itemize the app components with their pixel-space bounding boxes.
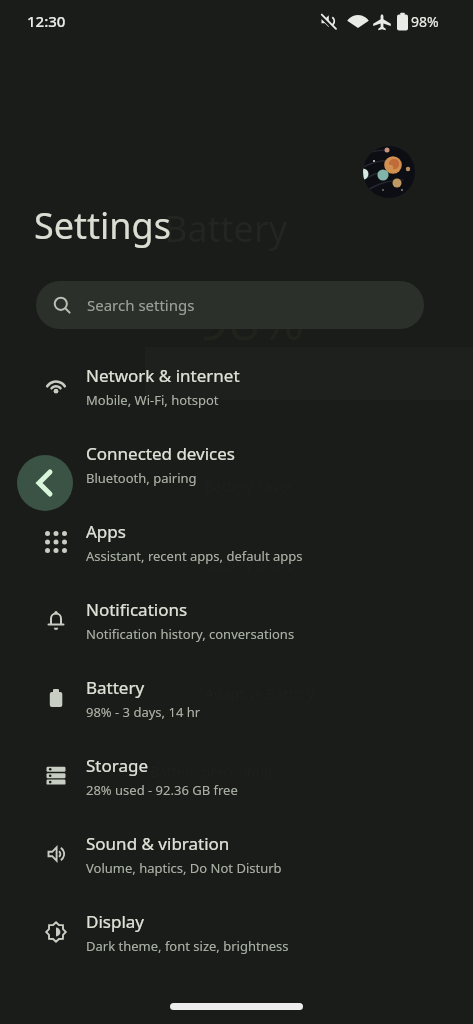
staticText: 28% used - 92.36 GB free bbox=[86, 781, 238, 799]
staticText: Network & internet bbox=[86, 364, 240, 387]
button[interactable]: Sound & vibration bbox=[0, 815, 473, 893]
staticText: 98% bbox=[411, 12, 439, 31]
staticText: Dark theme, font size, brightness bbox=[86, 937, 289, 955]
button[interactable]: Battery bbox=[0, 659, 473, 737]
staticText: Bluetooth, pairing bbox=[86, 469, 197, 487]
button[interactable]: Display bbox=[0, 893, 473, 971]
staticText: 98% - 3 days, 14 hr bbox=[86, 703, 201, 721]
staticText: Battery Share bbox=[205, 555, 295, 574]
staticText: Storage bbox=[86, 754, 149, 777]
staticText: Connected devices bbox=[86, 442, 236, 465]
staticText: Mobile, Wi-Fi, hotspot bbox=[86, 391, 219, 409]
staticText: Apps bbox=[86, 520, 126, 543]
button[interactable] bbox=[17, 455, 73, 511]
staticText: Notifications bbox=[86, 598, 188, 621]
staticText: Display bbox=[86, 910, 144, 933]
staticText: Assistant, recent apps, default apps bbox=[86, 547, 303, 565]
staticText: Settings bbox=[34, 201, 171, 250]
button[interactable]: Connected devices bbox=[0, 425, 473, 503]
staticText: 98% bbox=[198, 282, 305, 356]
button[interactable]: Notifications bbox=[0, 581, 473, 659]
staticText: Volume, haptics, Do Not Disturb bbox=[86, 859, 282, 877]
staticText: 12:30 bbox=[27, 11, 66, 31]
button[interactable]: Network & internet bbox=[0, 347, 473, 425]
staticText: Battery bbox=[86, 676, 145, 699]
staticText: Sound & vibration bbox=[86, 832, 230, 855]
button[interactable]: Search settings bbox=[36, 281, 424, 329]
staticText: Notification history, conversations bbox=[86, 625, 295, 643]
staticText: Search settings bbox=[87, 295, 195, 315]
staticText: Battery bbox=[164, 204, 288, 253]
button[interactable]: Storage bbox=[0, 737, 473, 815]
button[interactable]: Apps bbox=[0, 503, 473, 581]
